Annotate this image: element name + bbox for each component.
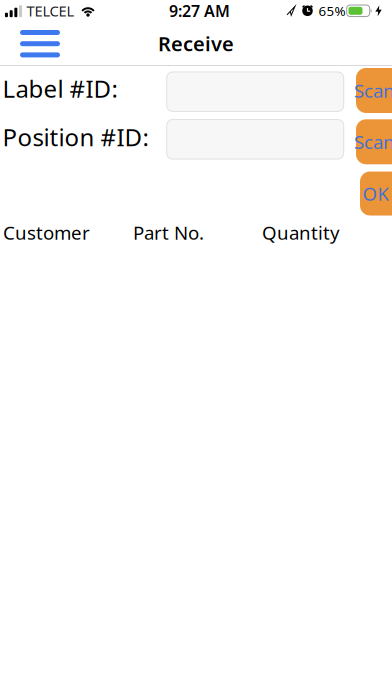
staticText: 65% (318, 2, 345, 20)
staticText: 9:27 AM (169, 0, 230, 21)
button[interactable]: Scan (356, 119, 392, 164)
staticText: Position #ID: (2, 121, 148, 153)
button[interactable]: OK (360, 171, 392, 215)
button[interactable]: Menu (16, 26, 64, 62)
staticText: OK (362, 181, 389, 206)
button[interactable]: Label #ID (167, 72, 344, 111)
staticText: Part No. (133, 220, 204, 245)
staticText: Scan (354, 78, 392, 103)
staticText: Customer (3, 220, 90, 245)
staticText: Quantity (262, 220, 340, 245)
staticText: Scan (354, 129, 392, 154)
button[interactable]: Scan (356, 68, 392, 113)
staticText: Label #ID: (2, 73, 117, 104)
staticText: Receive (158, 30, 234, 57)
staticText: TELCEL (26, 1, 74, 21)
